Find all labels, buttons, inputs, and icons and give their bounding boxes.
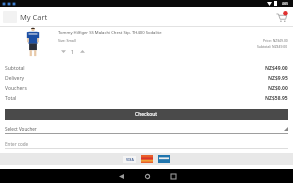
- staticText: NZ$0.00: [268, 85, 288, 92]
- button[interactable]: Recents: [160, 169, 186, 183]
- button[interactable]: Enter code: [5, 139, 288, 149]
- staticText: 4:55: [282, 2, 288, 6]
- staticText: Vouchers: [5, 85, 27, 92]
- staticText: Tommy Hilfiger SS Malachi Chest Stp. TH4…: [58, 30, 162, 36]
- staticText: Size: Small: [58, 38, 76, 43]
- staticText: Total: [5, 95, 17, 102]
- staticText: Delivery: [5, 75, 25, 82]
- button[interactable]: Checkout: [5, 109, 288, 120]
- staticText: Subtotal: NZ$49.00: [257, 44, 288, 49]
- staticText: My Cart: [20, 12, 48, 22]
- staticText: Select Voucher: [5, 126, 37, 132]
- staticText: Checkout: [135, 111, 158, 118]
- staticText: VISA: [126, 157, 134, 162]
- button[interactable]: Cart: [274, 10, 288, 24]
- button[interactable]: Decrease: [58, 47, 68, 56]
- button[interactable]: Back: [108, 169, 134, 183]
- staticText: Enter code: [5, 141, 29, 147]
- staticText: NZ$9.95: [268, 75, 288, 82]
- button[interactable]: Home: [134, 169, 160, 183]
- staticText: NZ$49.00: [265, 65, 288, 72]
- staticText: 1: [71, 49, 74, 55]
- staticText: NZ$58.95: [265, 95, 288, 102]
- button[interactable]: Select Voucher: [5, 124, 288, 134]
- staticText: Price: NZ$49.00: [263, 38, 288, 43]
- button[interactable]: Increase: [77, 47, 87, 56]
- staticText: Subtotal: [5, 65, 25, 72]
